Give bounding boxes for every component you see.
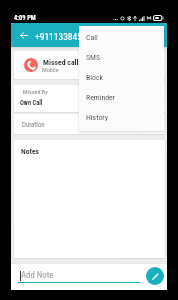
staticText: Reminder bbox=[86, 93, 116, 102]
staticText: +911133845678 bbox=[35, 31, 96, 42]
staticText: Add Note bbox=[21, 270, 54, 280]
staticText: Notes bbox=[21, 147, 40, 156]
staticText: 4:09 PM bbox=[14, 14, 36, 22]
staticText: Own Call bbox=[20, 99, 43, 107]
button[interactable]: Block bbox=[79, 67, 164, 87]
staticText: SMS bbox=[86, 53, 100, 62]
button[interactable]: Call bbox=[79, 27, 164, 47]
staticText: Duration bbox=[22, 121, 45, 129]
staticText: History bbox=[86, 113, 109, 122]
staticText: Block bbox=[86, 73, 104, 82]
button[interactable]: History bbox=[79, 107, 164, 127]
staticText: Mobile bbox=[42, 66, 59, 73]
staticText: Missed By bbox=[23, 88, 48, 95]
button[interactable]: Back bbox=[17, 23, 31, 47]
staticText: Missed call bbox=[43, 58, 79, 67]
staticText: Call bbox=[86, 33, 98, 42]
button[interactable]: Edit note bbox=[146, 267, 164, 285]
button[interactable]: Reminder bbox=[79, 87, 164, 107]
button[interactable]: SMS bbox=[79, 47, 164, 67]
